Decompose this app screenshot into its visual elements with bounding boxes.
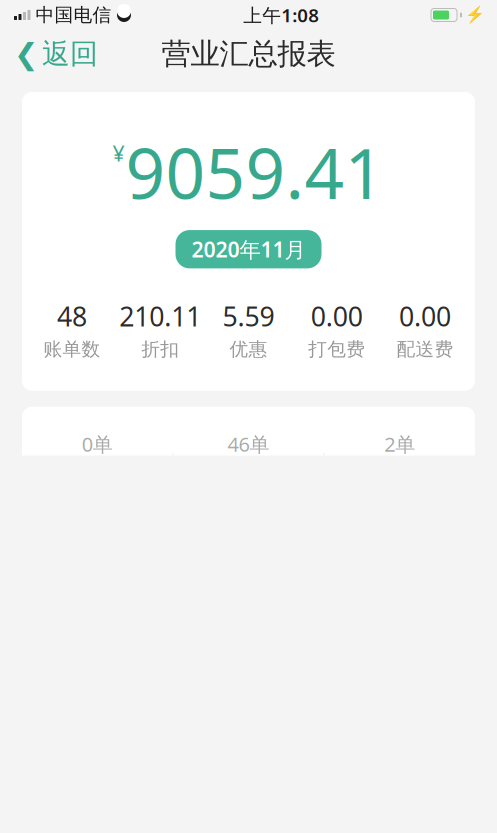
staticText: 中国电信 xyxy=(35,3,111,26)
staticText: 营业汇总报表 xyxy=(161,36,335,72)
staticText: 48 xyxy=(57,298,87,334)
staticText: 46单 xyxy=(227,431,269,457)
staticText: 账单数 xyxy=(44,338,101,361)
staticText: 打包费 xyxy=(308,338,365,361)
staticText: ❮ xyxy=(14,37,39,71)
staticText: 9059.41 xyxy=(125,126,384,218)
staticText: 折扣 xyxy=(141,338,179,361)
button[interactable]: ❮ xyxy=(4,31,108,77)
staticText: 配送费 xyxy=(396,338,453,361)
staticText: 2020年11月 xyxy=(191,235,305,263)
staticText: 0单 xyxy=(82,431,113,457)
staticText: 5.59 xyxy=(222,298,274,334)
staticText: 2单 xyxy=(384,431,415,457)
staticText: 返回 xyxy=(42,37,98,71)
staticText: 优惠 xyxy=(229,338,267,361)
staticText: ¥ xyxy=(112,139,124,167)
staticText: ⚡ xyxy=(465,6,485,24)
staticText: 0.00 xyxy=(311,298,363,334)
staticText: 上午1:08 xyxy=(243,3,319,27)
staticText: 0.00 xyxy=(399,298,451,334)
staticText: 210.11 xyxy=(119,298,201,334)
